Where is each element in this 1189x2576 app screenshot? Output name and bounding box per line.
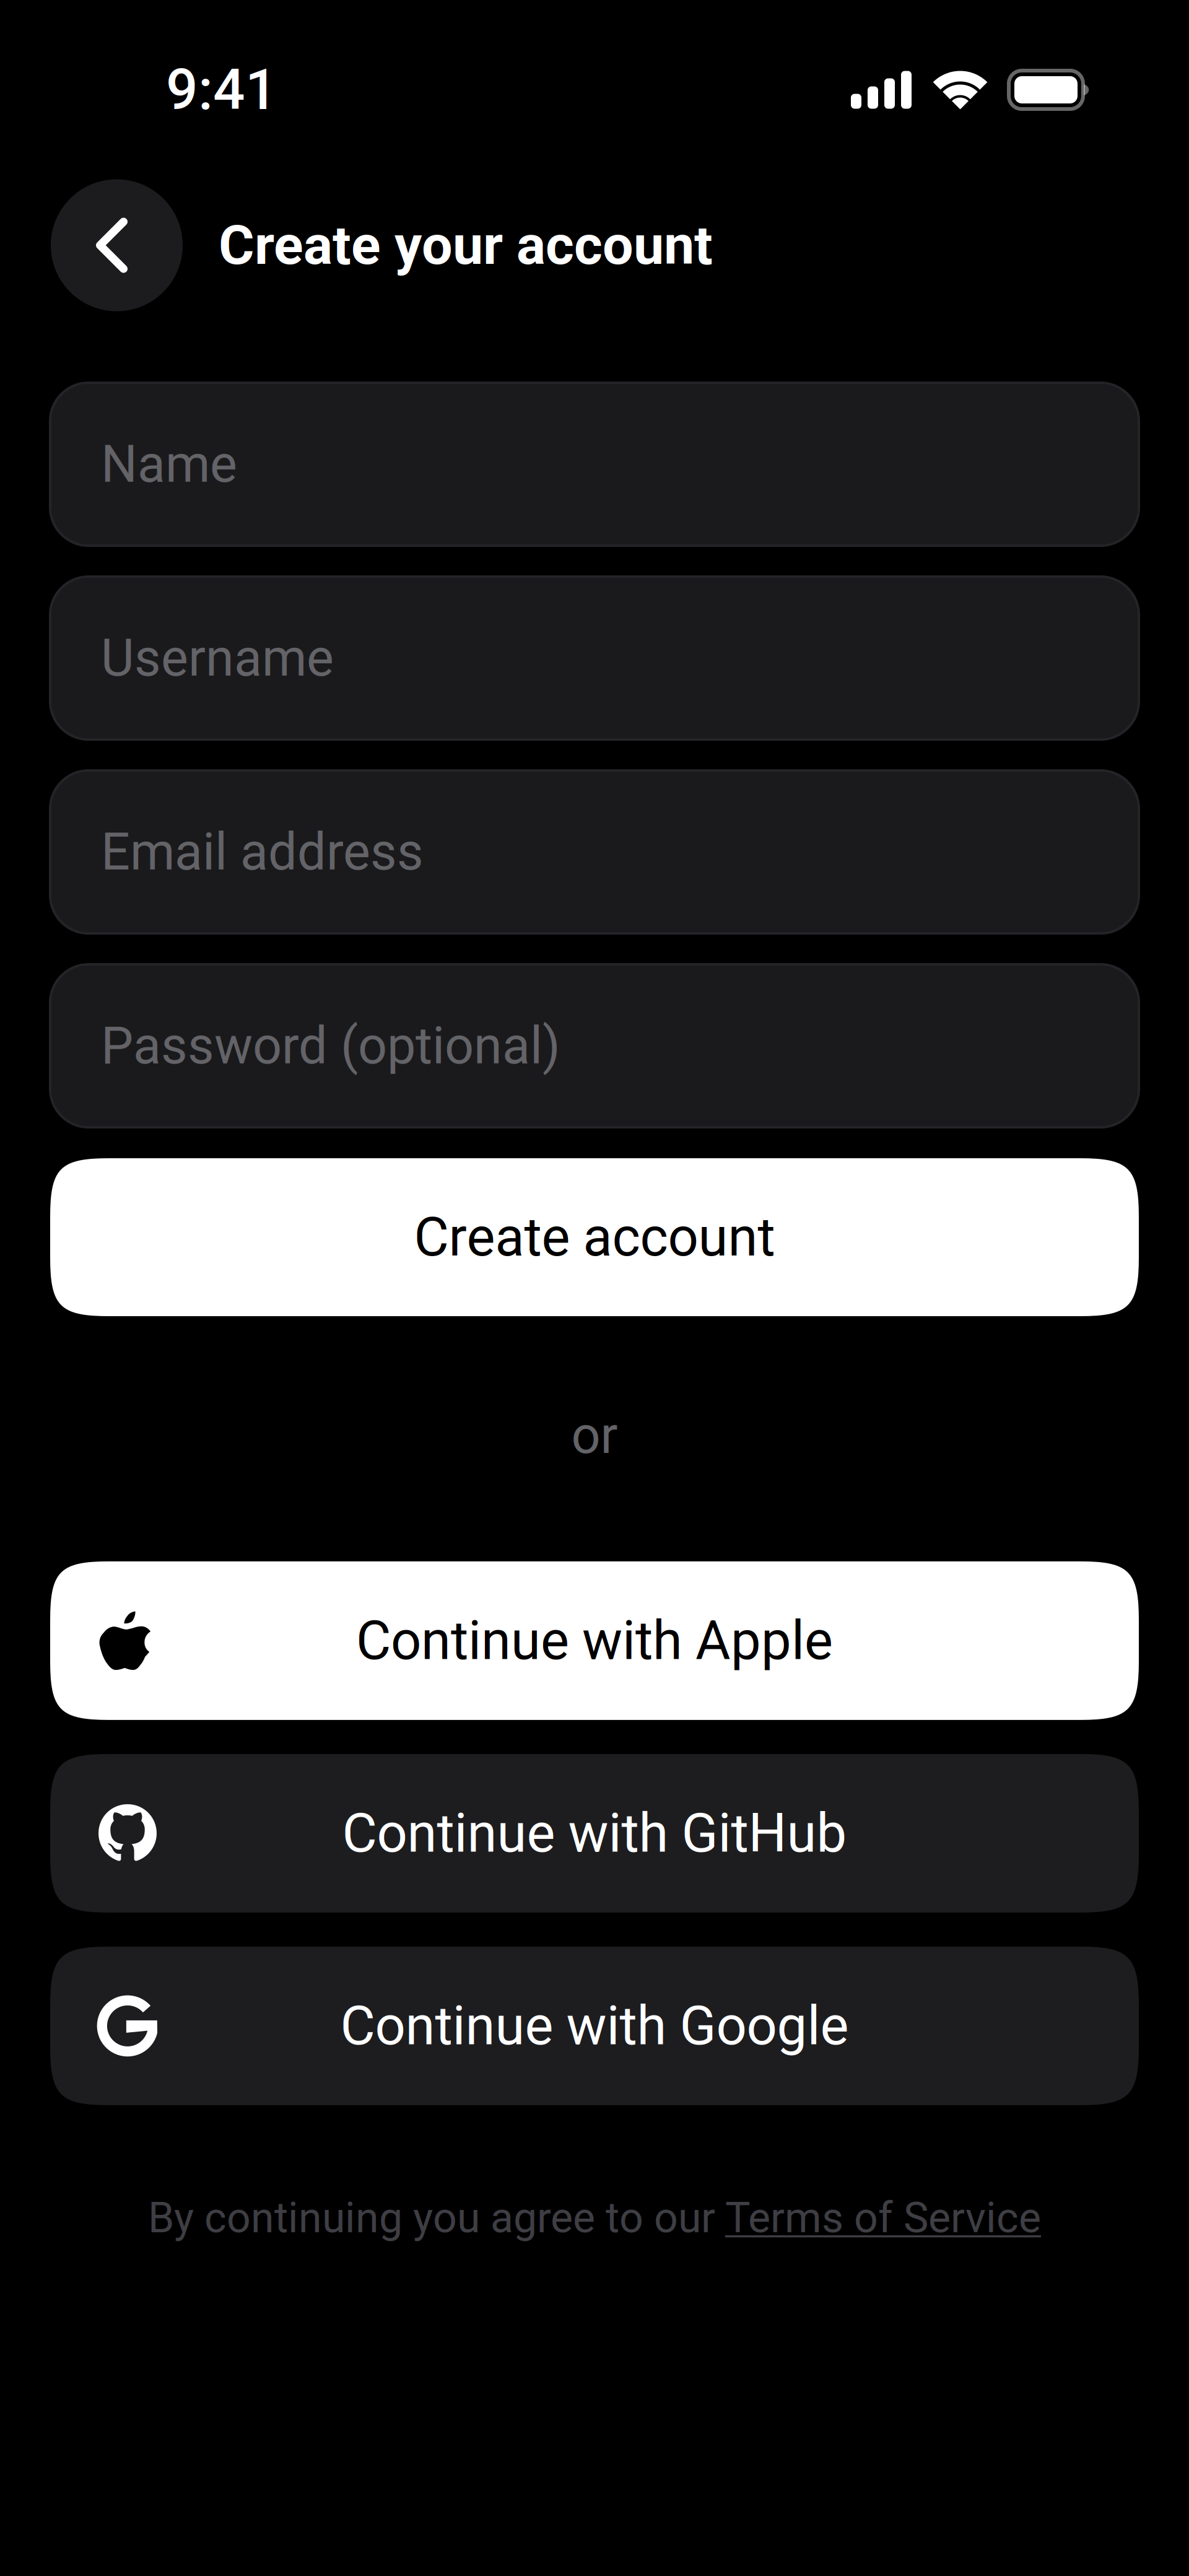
staticText: Continue with Apple xyxy=(356,1609,833,1672)
staticText: Email address xyxy=(101,822,424,882)
staticText: Continue with Google xyxy=(340,1994,849,2057)
staticText: 9:41 xyxy=(166,57,277,123)
staticText: Password (optional) xyxy=(101,1016,560,1076)
staticText: Create your account xyxy=(219,213,713,277)
button[interactable]: Create account xyxy=(50,1158,1139,1316)
button[interactable]: Continue with GitHub xyxy=(50,1754,1139,1913)
staticText: Name xyxy=(101,434,237,494)
staticText: By continuing you agree to our Terms of … xyxy=(148,2193,1041,2243)
staticText: Create account xyxy=(414,1206,775,1269)
button[interactable]: Continue with Google xyxy=(50,1947,1139,2105)
button[interactable]: Continue with Apple xyxy=(50,1561,1139,1720)
staticText: Username xyxy=(101,628,334,688)
button[interactable]: Back xyxy=(51,179,183,311)
staticText: or xyxy=(571,1405,618,1465)
staticText: Continue with GitHub xyxy=(342,1802,847,1865)
button[interactable]: By continuing you agree to our Terms of … xyxy=(148,2193,1041,2243)
